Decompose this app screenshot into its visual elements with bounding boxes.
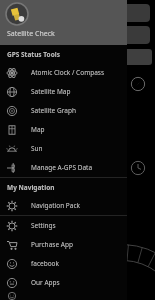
staticText: facebook [31, 259, 60, 268]
button[interactable]: facebook [0, 254, 127, 273]
button[interactable]: Manage A-GPS Data [0, 158, 127, 177]
staticText: Map [31, 125, 45, 134]
staticText: GPS Status Tools [7, 50, 60, 59]
staticText: Navigation Pack [31, 201, 81, 210]
staticText: My Navigation [7, 183, 55, 192]
button[interactable]: Satellite Graph [0, 101, 127, 120]
staticText: Purchase App [31, 240, 73, 249]
other: Compass [131, 77, 145, 91]
button[interactable]: Satellite Map [0, 82, 127, 101]
staticText: Our Apps [31, 278, 60, 287]
button[interactable]: Atomic Clock / Compass [0, 63, 127, 82]
staticText: Settings [31, 221, 56, 230]
staticText: Sun [31, 144, 43, 153]
staticText: Satellite Graph [31, 106, 76, 115]
other: Clock [131, 161, 145, 175]
staticText: Atomic Clock / Compass [31, 68, 105, 77]
button[interactable]: Purchase App [0, 235, 127, 254]
button[interactable]: Sun [0, 139, 127, 158]
staticText: Satellite Map [31, 87, 71, 96]
button[interactable]: Our Apps [0, 273, 127, 292]
staticText: Manage A-GPS Data [31, 163, 93, 172]
button[interactable]: Navigation Pack [0, 196, 127, 215]
staticText: Satellite Check [7, 29, 55, 39]
button[interactable]: Settings [0, 216, 127, 235]
button[interactable] [0, 292, 127, 300]
button[interactable]: Map [0, 120, 127, 139]
